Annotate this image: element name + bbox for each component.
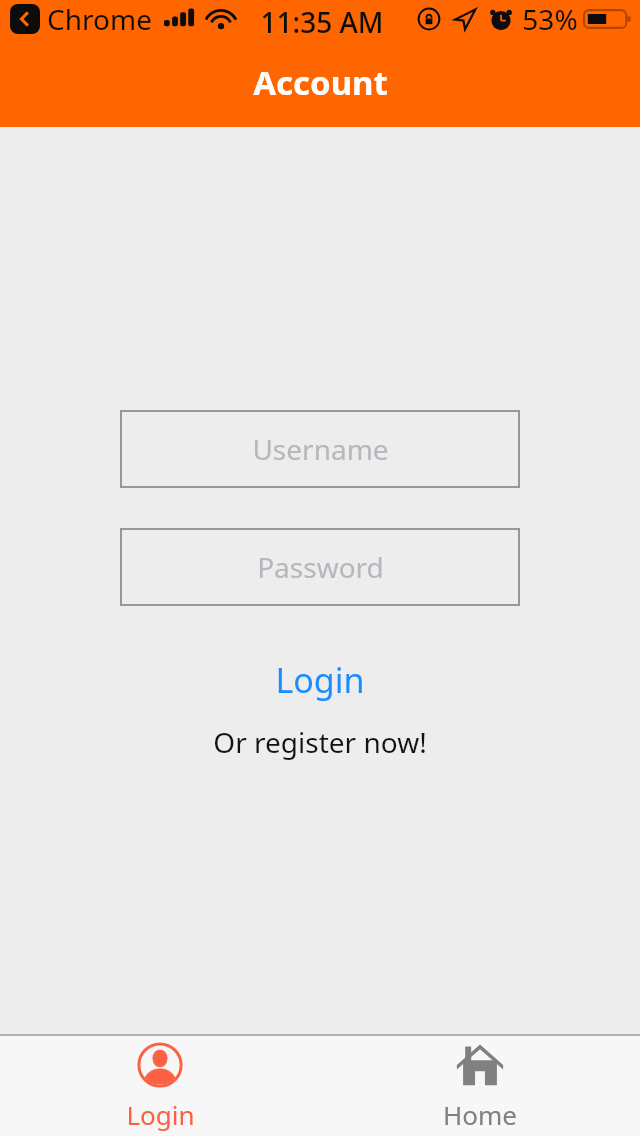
staticText: Login (275, 657, 365, 703)
staticText: Account (253, 60, 388, 105)
staticText: Username (252, 430, 389, 468)
staticText: Password (257, 548, 384, 586)
staticText: 11:35 AM (260, 3, 384, 41)
button[interactable]: Username (120, 410, 520, 488)
button[interactable]: Login (261, 653, 379, 707)
staticText: Login (126, 1097, 195, 1132)
button[interactable]: Home (320, 1034, 640, 1136)
staticText: Chrome (47, 0, 152, 38)
button[interactable]: Or register now! (199, 719, 441, 765)
button[interactable]: Login (0, 1034, 320, 1136)
staticText: 53% (522, 0, 578, 38)
button[interactable]: Back (10, 4, 40, 34)
staticText: Home (443, 1097, 517, 1132)
button[interactable]: Password (120, 528, 520, 606)
staticText: Or register now! (213, 723, 427, 761)
